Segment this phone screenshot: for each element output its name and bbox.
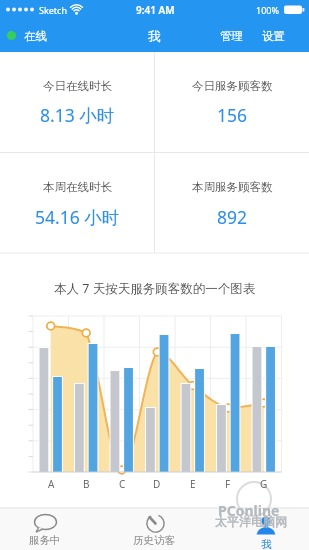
- staticText: 100%: [256, 4, 279, 16]
- staticText: 892: [217, 205, 248, 227]
- staticText: 今日服务顾客数: [192, 79, 273, 93]
- staticText: 我: [261, 538, 272, 550]
- staticText: Sketch: [39, 4, 67, 16]
- staticText: A: [48, 477, 55, 491]
- staticText: 服务中: [29, 534, 61, 547]
- button[interactable]: [0, 508, 103, 550]
- staticText: 今日在线时长: [43, 79, 112, 93]
- button[interactable]: [0, 52, 154, 152]
- staticText: B: [83, 477, 90, 491]
- staticText: 本周在线时长: [43, 180, 112, 194]
- button[interactable]: [0, 153, 154, 253]
- staticText: PConline: [218, 501, 280, 518]
- button[interactable]: [206, 508, 309, 550]
- button[interactable]: 设置: [255, 26, 291, 45]
- staticText: E: [190, 477, 196, 491]
- staticText: F: [225, 477, 231, 491]
- staticText: C: [119, 477, 126, 491]
- staticText: 8.13 小时: [40, 103, 115, 125]
- staticText: 我: [148, 28, 161, 44]
- staticText: 156: [217, 103, 248, 125]
- staticText: D: [153, 477, 161, 491]
- button[interactable]: [155, 52, 309, 152]
- staticText: 本人 7 天按天服务顾客数的一个图表: [54, 280, 256, 297]
- staticText: 9:41 AM: [136, 3, 175, 17]
- staticText: 太平洋电脑网: [215, 514, 287, 528]
- staticText: 管理: [220, 29, 243, 43]
- staticText: 历史访客: [133, 534, 175, 547]
- button[interactable]: [103, 508, 206, 550]
- button[interactable]: 在线: [20, 26, 50, 45]
- button[interactable]: 管理: [213, 26, 249, 45]
- staticText: 本周服务顾客数: [192, 180, 273, 194]
- staticText: 设置: [262, 29, 285, 43]
- button[interactable]: [155, 153, 309, 253]
- staticText: 54.16 小时: [35, 205, 120, 227]
- staticText: G: [260, 477, 268, 491]
- staticText: 在线: [24, 29, 47, 43]
